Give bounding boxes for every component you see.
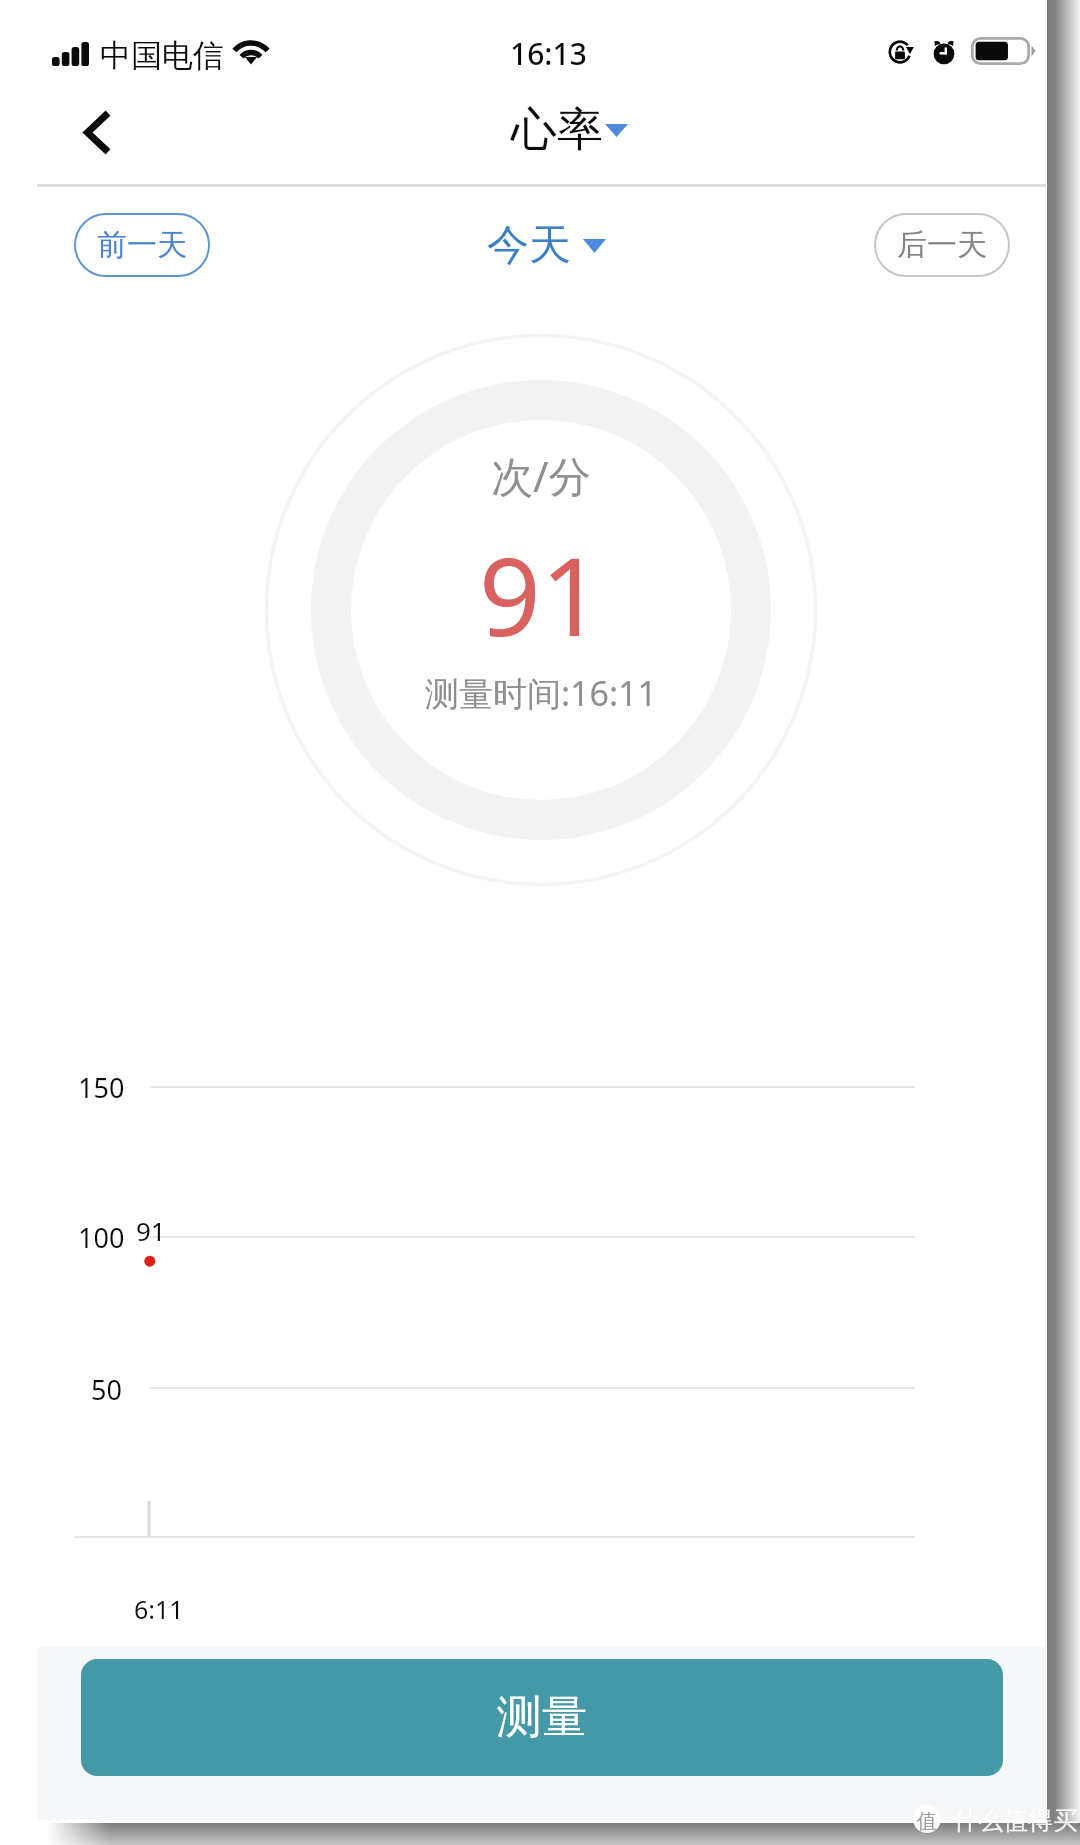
staticText: 中国电信	[100, 36, 224, 75]
button[interactable]: 前一天	[74, 213, 210, 277]
staticText: 后一天	[897, 226, 987, 264]
button[interactable]: 今天	[487, 219, 606, 272]
staticText: 91	[479, 521, 603, 668]
staticText: 心率	[511, 101, 603, 159]
staticText: 16:13	[510, 33, 587, 74]
staticText: 50	[91, 1371, 122, 1408]
staticText: 今天	[487, 219, 571, 272]
staticText: 91	[136, 1213, 166, 1248]
staticText: 100	[78, 1219, 125, 1256]
button[interactable]: 后一天	[874, 213, 1010, 277]
button[interactable]: 测量	[81, 1659, 1003, 1776]
staticText: 前一天	[97, 226, 187, 264]
button[interactable]: 心率	[511, 101, 628, 159]
staticText: 150	[78, 1069, 125, 1106]
staticText: 值	[917, 1809, 937, 1834]
button[interactable]: Back	[68, 104, 124, 160]
staticText: 次/分	[491, 447, 591, 504]
staticText: 测量时间:16:11	[425, 670, 658, 716]
staticText: 6:11	[134, 1592, 184, 1626]
staticText: 测量	[497, 1689, 587, 1746]
staticText: 什么值得买	[953, 1805, 1078, 1836]
